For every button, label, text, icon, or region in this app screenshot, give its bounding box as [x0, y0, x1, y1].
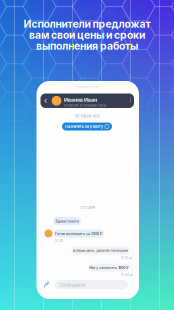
- staticText: выполнения работы: [36, 40, 138, 52]
- staticText: Назначить на работу: [65, 124, 103, 129]
- staticText: Могу заплатить 1800 ₽: [89, 265, 129, 270]
- staticText: Здравствуйте: [55, 219, 79, 223]
- staticText: 12:44: [121, 273, 129, 277]
- staticText: Добрый день, давайте поговорим: [72, 249, 128, 253]
- staticText: Исполнители предложат: [23, 18, 150, 30]
- staticText: Иванов Иван: [64, 97, 97, 103]
- staticText: Сообщение: [59, 283, 85, 288]
- staticText: История чата: [75, 113, 100, 118]
- staticText: 12:30: [55, 239, 63, 243]
- staticText: 12:41: [121, 256, 128, 260]
- staticText: вам свои цены и сроки: [29, 29, 145, 41]
- staticText: Ответит в течение часа: [64, 103, 106, 108]
- staticText: Готов выполнить за 2000 ₽: [55, 231, 103, 236]
- staticText: Сегодня: [80, 205, 95, 210]
